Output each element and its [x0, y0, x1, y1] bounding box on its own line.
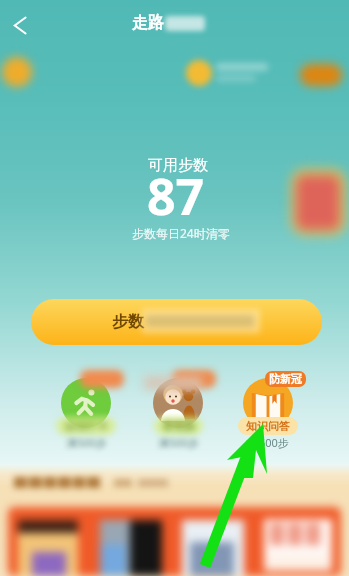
staticText: 满500步 — [66, 435, 107, 450]
button[interactable] — [8, 507, 341, 576]
staticText: 看视频 — [162, 419, 195, 433]
button[interactable]: Back — [3, 8, 37, 42]
staticText: 满500步 — [248, 435, 289, 450]
button[interactable]: 运动打卡 — [50, 372, 122, 452]
staticText: 步数每日24时清零 — [132, 225, 230, 241]
staticText: 可用步数 — [148, 156, 208, 175]
staticText: 87 — [147, 162, 205, 230]
button[interactable]: 步数 — [31, 299, 322, 345]
staticText: 运动打卡 — [64, 419, 108, 433]
staticText: 防新冠 — [269, 372, 302, 386]
staticText: 满500步 — [158, 435, 199, 450]
staticText: 走路 — [132, 13, 164, 33]
button[interactable]: 看视频 — [142, 372, 214, 452]
staticText: 知识问答 — [246, 419, 290, 433]
button[interactable]: 知识问答 — [232, 372, 304, 452]
staticText: 步数 — [112, 312, 144, 332]
